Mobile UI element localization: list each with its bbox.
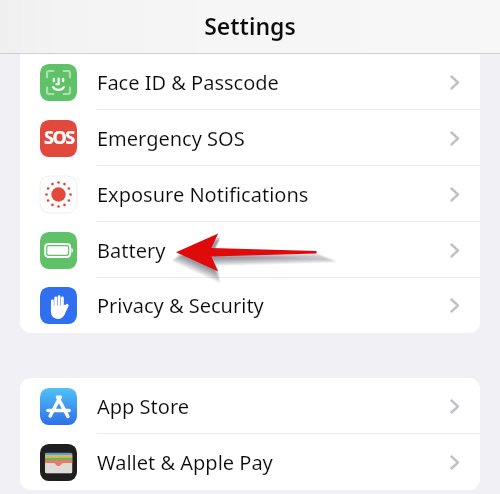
button[interactable]: Exposure Notifications (20, 166, 480, 222)
staticText: Settings (204, 10, 296, 41)
button[interactable]: App Store (20, 378, 480, 434)
staticText: Face ID & Passcode (97, 69, 279, 96)
button[interactable]: SOS (20, 110, 480, 166)
staticText: Wallet & Apple Pay (97, 449, 273, 476)
staticText: Exposure Notifications (97, 181, 309, 208)
staticText: Emergency SOS (97, 125, 245, 152)
staticText: SOS (44, 125, 74, 150)
staticText: App Store (97, 393, 190, 420)
button[interactable]: Privacy & Security (20, 278, 480, 333)
button[interactable]: Face ID & Passcode (20, 54, 480, 110)
button[interactable]: Battery (20, 222, 480, 278)
staticText: Battery (97, 237, 166, 264)
button[interactable]: Wallet & Apple Pay (20, 434, 480, 490)
staticText: Privacy & Security (97, 292, 264, 319)
